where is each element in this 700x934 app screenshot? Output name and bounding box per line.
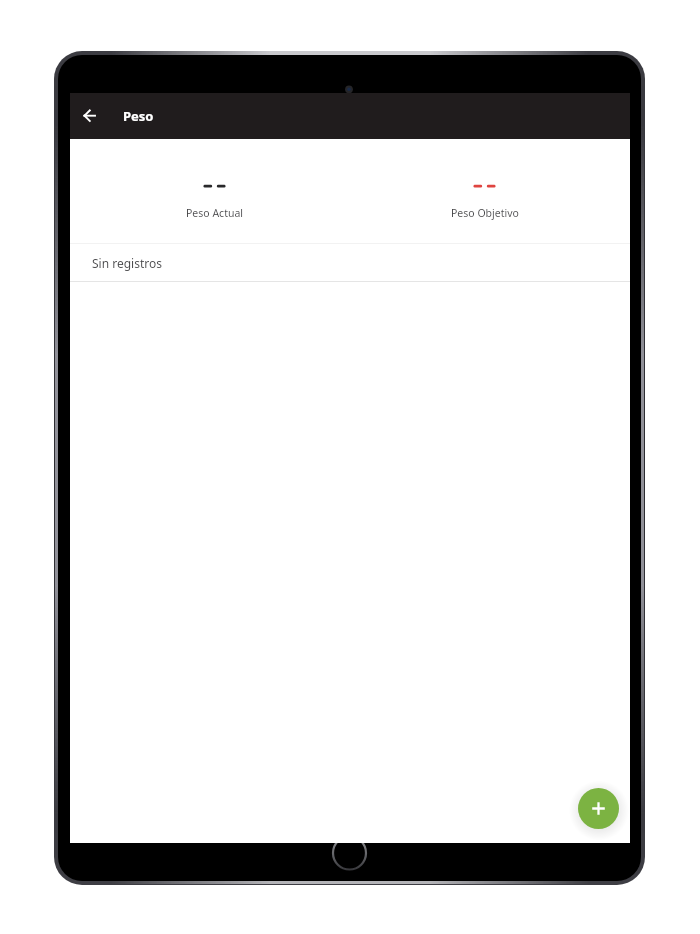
staticText: Peso [123, 107, 154, 125]
button[interactable] [76, 102, 104, 130]
staticText: Peso Actual [186, 206, 244, 220]
staticText: Sin registros [92, 255, 162, 271]
button[interactable] [578, 788, 619, 829]
staticText: Peso Objetivo [451, 206, 519, 220]
